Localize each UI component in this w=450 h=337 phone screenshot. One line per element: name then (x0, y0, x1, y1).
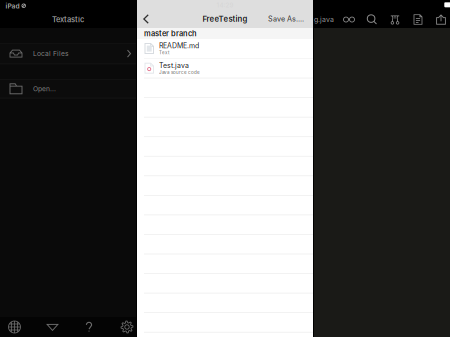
staticText: Open... (33, 85, 56, 93)
staticText: README.md (159, 42, 199, 50)
staticText: FreeTesting (202, 14, 247, 24)
button[interactable]: Documents (408, 11, 427, 28)
button[interactable]: Reading Mode (339, 11, 358, 28)
button[interactable]: Connections (37, 317, 67, 337)
staticText: Text (159, 50, 169, 55)
button[interactable]: Save As.... (263, 10, 309, 28)
button[interactable]: Help (74, 317, 104, 337)
staticText: Textastic (52, 15, 84, 24)
button[interactable]: Version Control (385, 11, 404, 28)
staticText: master branch (144, 29, 197, 38)
staticText: g.java (314, 15, 334, 24)
button[interactable]: Web Server (0, 317, 29, 337)
staticText: Java source code (159, 70, 200, 75)
button[interactable]: Open... (0, 80, 136, 98)
button[interactable]: Search (362, 11, 381, 28)
button[interactable]: Settings (112, 317, 142, 337)
button[interactable]: Test.java (137, 59, 313, 78)
staticText: Local Files (33, 50, 69, 58)
staticText: Test.java (159, 61, 189, 70)
staticText: Save As.... (268, 15, 304, 23)
button[interactable]: Local Files (0, 44, 136, 64)
button[interactable]: Back (137, 10, 155, 28)
staticText: iPad (5, 2, 19, 10)
button[interactable]: Share (431, 11, 450, 28)
button[interactable]: README.md (137, 39, 313, 58)
